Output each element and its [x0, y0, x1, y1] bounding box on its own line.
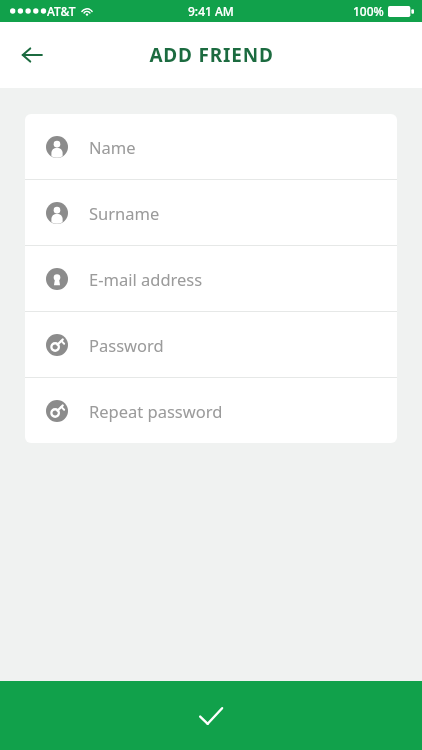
button[interactable]: Confirm	[0, 681, 422, 750]
staticText: Name	[89, 136, 136, 158]
staticText: 9:41 AM	[188, 3, 234, 19]
button[interactable]: Repeat password	[25, 378, 397, 443]
staticText: AT&T	[47, 3, 76, 19]
button[interactable]: Name	[25, 114, 397, 179]
staticText: 100%	[353, 3, 384, 19]
staticText: Surname	[89, 202, 160, 224]
button[interactable]: Surname	[25, 180, 397, 245]
staticText: ADD FRIEND	[149, 42, 274, 68]
staticText: Password	[89, 334, 164, 356]
button[interactable]: Back	[10, 33, 54, 77]
button[interactable]: Password	[25, 312, 397, 377]
staticText: Repeat password	[89, 400, 223, 422]
staticText: E-mail address	[89, 268, 203, 290]
button[interactable]: E-mail address	[25, 246, 397, 311]
